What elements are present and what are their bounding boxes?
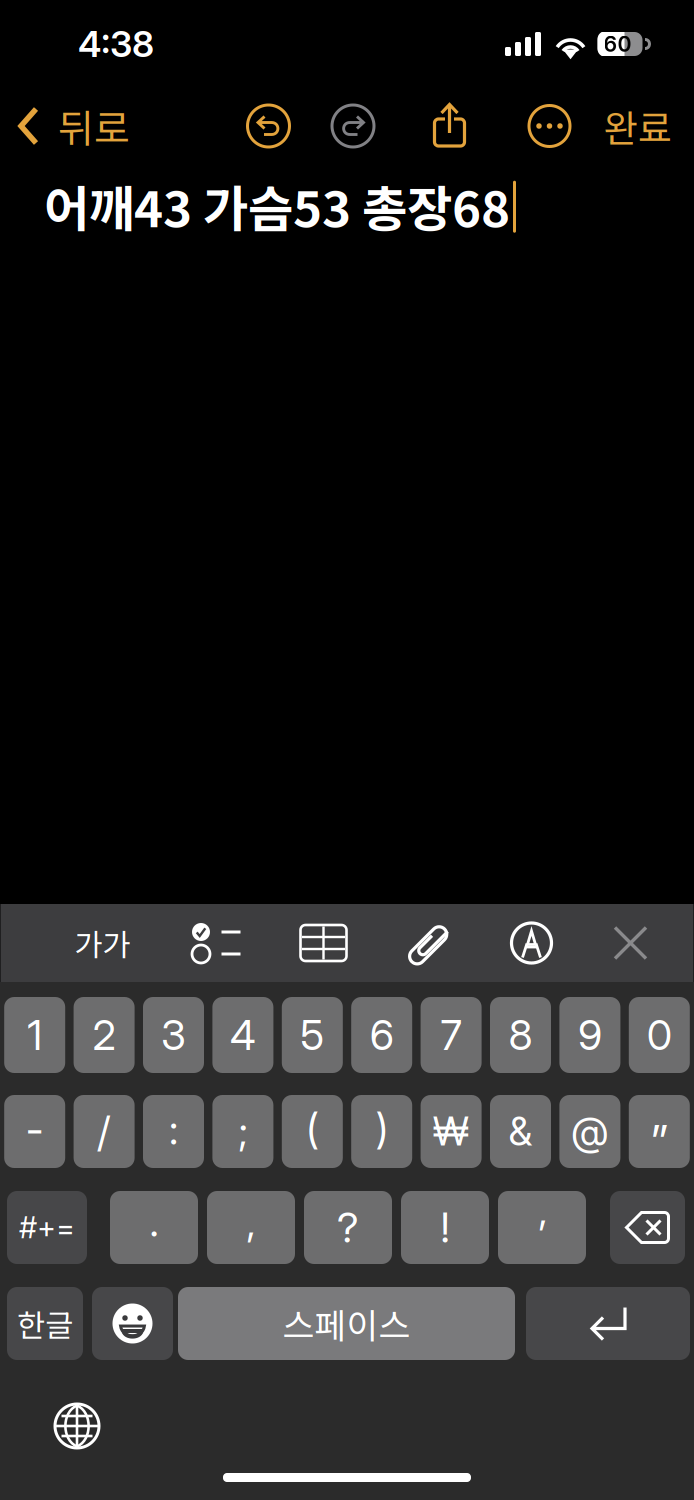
button[interactable]: Next keyboard — [48, 1397, 106, 1455]
button[interactable]: / — [74, 1095, 135, 1168]
button[interactable]: 2 — [74, 997, 135, 1073]
staticText: - — [26, 1104, 44, 1154]
button[interactable]: ? — [304, 1191, 392, 1264]
staticText: 가가 — [74, 921, 130, 965]
staticText: 5 — [300, 1010, 324, 1060]
button[interactable]: Delete — [610, 1191, 685, 1264]
button[interactable]: & — [490, 1095, 551, 1168]
staticText: ) — [376, 1103, 388, 1153]
staticText: 7 — [441, 1010, 462, 1060]
staticText: 한글 — [17, 1301, 73, 1346]
staticText: 2 — [93, 1010, 116, 1060]
button[interactable]: Hide keyboard — [599, 912, 661, 974]
staticText: ; — [238, 1105, 247, 1155]
button[interactable]: Markup — [501, 912, 561, 974]
button[interactable]: 3 — [143, 997, 204, 1073]
button[interactable]: Attach file — [400, 912, 460, 974]
button[interactable]: 6 — [351, 997, 412, 1073]
button[interactable]: , — [207, 1191, 295, 1264]
staticText: 9 — [578, 1010, 602, 1060]
staticText: 4 — [230, 1010, 256, 1060]
button[interactable]: @ — [559, 1095, 620, 1168]
staticText: 뒤로 — [58, 98, 130, 154]
button[interactable]: 7 — [421, 997, 482, 1073]
button[interactable]: 8 — [490, 997, 551, 1073]
staticText: #+= — [19, 1210, 75, 1245]
staticText: ” — [650, 1115, 669, 1166]
staticText: ! — [440, 1202, 449, 1252]
staticText: 8 — [508, 1010, 532, 1060]
staticText: / — [97, 1106, 111, 1156]
button[interactable]: #+= — [7, 1191, 87, 1264]
button[interactable]: : — [143, 1095, 204, 1168]
button[interactable]: Emoji — [92, 1287, 173, 1360]
button[interactable]: 0 — [629, 997, 690, 1073]
button[interactable]: ’ — [498, 1191, 586, 1264]
button[interactable]: 완료 — [596, 96, 679, 156]
button[interactable]: 5 — [282, 997, 343, 1073]
button[interactable]: Redo — [310, 96, 396, 156]
button[interactable]: 뒤로 — [0, 90, 130, 162]
button[interactable]: ) — [351, 1095, 412, 1168]
staticText: 3 — [161, 1010, 186, 1060]
button[interactable]: . — [110, 1191, 198, 1264]
staticText: : — [169, 1104, 178, 1154]
button[interactable]: 1 — [4, 997, 65, 1073]
staticText: . — [149, 1196, 158, 1246]
staticText: 완료 — [603, 99, 671, 153]
staticText: 스페이스 — [282, 1298, 410, 1349]
button[interactable]: 스페이스 — [178, 1287, 515, 1360]
staticText: ’ — [538, 1210, 546, 1260]
button[interactable]: More — [503, 96, 596, 156]
staticText: 어깨43 가슴53 총장68 — [44, 170, 510, 241]
button[interactable]: Return — [526, 1287, 690, 1360]
button[interactable]: Undo — [227, 96, 310, 156]
button[interactable]: Table — [293, 912, 353, 974]
staticText: 1 — [27, 1010, 42, 1060]
button[interactable]: ₩ — [421, 1095, 482, 1168]
button[interactable]: 9 — [559, 997, 620, 1073]
staticText: 60 — [603, 31, 631, 57]
staticText: , — [246, 1196, 255, 1246]
button[interactable]: Checklist — [183, 912, 245, 974]
button[interactable]: ! — [401, 1191, 489, 1264]
button[interactable]: 한글 — [7, 1287, 83, 1360]
staticText: 0 — [647, 1010, 672, 1060]
staticText: & — [508, 1108, 532, 1155]
button[interactable]: ” — [629, 1095, 690, 1168]
button[interactable]: ; — [212, 1095, 273, 1168]
staticText: @ — [571, 1108, 609, 1155]
staticText: ? — [337, 1202, 359, 1252]
staticText: ₩ — [433, 1108, 469, 1155]
staticText: 6 — [370, 1010, 394, 1060]
button[interactable]: - — [4, 1095, 65, 1168]
button[interactable]: Share — [396, 96, 503, 156]
staticText: 4:38 — [78, 22, 154, 66]
button[interactable]: 4 — [212, 997, 273, 1073]
button[interactable]: ( — [282, 1095, 343, 1168]
button[interactable]: 가가 — [62, 912, 142, 974]
staticText: ( — [306, 1103, 318, 1153]
